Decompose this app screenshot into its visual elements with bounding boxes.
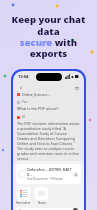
staticText: Online_Instruct… xyxy=(22,92,50,97)
staticText: Notes xyxy=(38,201,46,205)
staticText: Copy xyxy=(19,208,28,210)
button[interactable]: OnlineIns…-037905_R4870… xyxy=(16,164,81,184)
staticText: Keep your chat data secure with exports xyxy=(4,13,93,60)
button[interactable]: Copy xyxy=(16,208,81,210)
button[interactable]: Close xyxy=(73,172,78,177)
staticText: You xyxy=(22,100,28,104)
staticText: 13:04 xyxy=(18,74,29,79)
staticText: AI xyxy=(22,115,26,119)
button[interactable]: Share xyxy=(73,84,80,91)
button[interactable]: Notes xyxy=(35,187,48,205)
staticText: Text Document · 130 bytes xyxy=(27,177,63,181)
staticText: Reminders xyxy=(16,201,31,205)
staticText: OnlineIns…-037905_R4870… xyxy=(27,167,73,177)
staticText: What is the PDF about? xyxy=(17,106,59,111)
staticText: The PDF contains information about a qua… xyxy=(17,121,80,161)
button[interactable]: Reminders xyxy=(16,187,31,205)
button[interactable]: Back xyxy=(17,84,24,91)
